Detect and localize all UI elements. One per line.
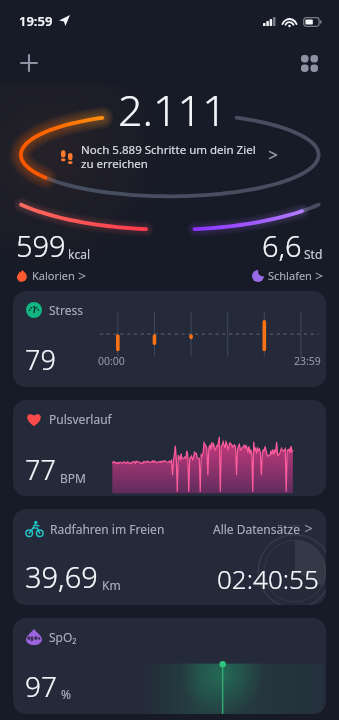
staticText: BPM xyxy=(60,470,86,486)
staticText: Schlafen xyxy=(268,268,312,283)
button[interactable]: 599 xyxy=(16,226,90,283)
staticText: 97 xyxy=(25,667,57,705)
staticText: 02:40:55 xyxy=(217,561,319,596)
staticText: Alle Datensätze xyxy=(213,521,300,537)
staticText: 39,69 xyxy=(25,557,98,596)
staticText: % xyxy=(61,686,71,702)
button[interactable]: Pulsverlauf xyxy=(13,400,326,496)
button[interactable]: Radfahren im Freien xyxy=(13,509,326,605)
button[interactable]: 6,6 xyxy=(252,226,323,283)
button[interactable]: SpO₂ xyxy=(13,618,326,714)
staticText: 23:59 xyxy=(294,354,321,368)
staticText: Km xyxy=(102,577,121,593)
button[interactable]: Stress xyxy=(13,291,326,387)
staticText: SpO₂ xyxy=(49,629,77,645)
staticText: 79 xyxy=(25,341,56,378)
staticText: 19:59 xyxy=(19,12,53,30)
staticText: Std xyxy=(304,246,323,262)
staticText: Noch 5.889 Schritte um dein Ziel zu erre… xyxy=(81,142,256,172)
staticText: Stress xyxy=(49,302,83,318)
staticText: 599 xyxy=(16,226,66,265)
button[interactable]: Add xyxy=(10,44,48,82)
staticText: Pulsverlauf xyxy=(49,411,112,427)
button[interactable]: Noch 5.889 Schritte um dein Ziel zu erre… xyxy=(61,142,279,172)
staticText: 00:00 xyxy=(98,354,125,368)
staticText: 6,6 xyxy=(262,226,302,265)
staticText: 77 xyxy=(25,451,56,488)
staticText: kcal xyxy=(68,246,90,262)
staticText: Radfahren im Freien xyxy=(50,521,165,537)
staticText: 2.111 xyxy=(118,80,227,139)
button[interactable]: Apps xyxy=(290,44,328,82)
staticText: Kalorien xyxy=(32,268,75,283)
